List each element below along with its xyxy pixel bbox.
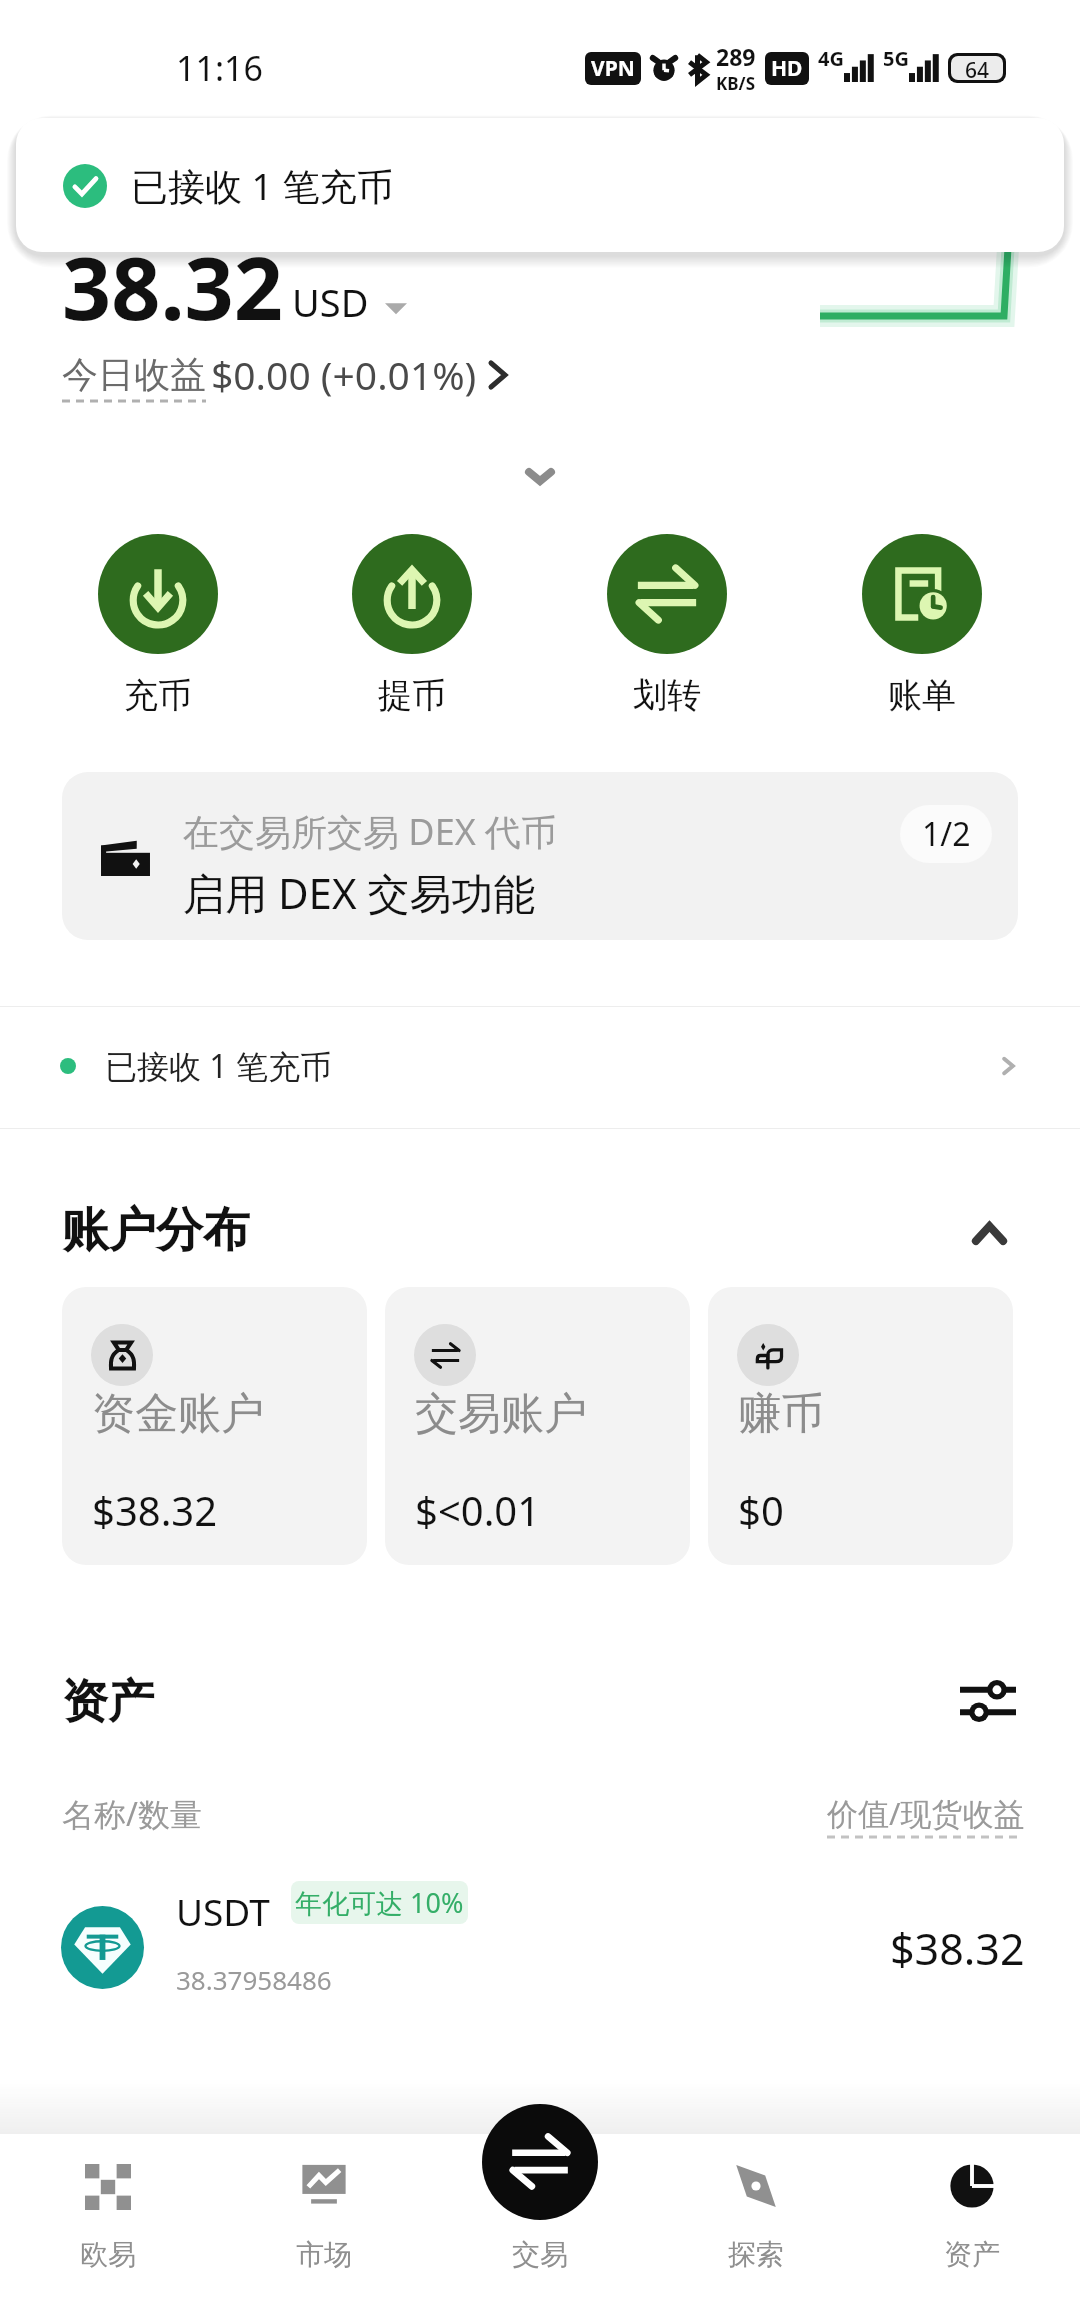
staticText: 交易账户	[415, 1387, 587, 1441]
staticText: 账单	[888, 674, 956, 717]
staticText: 11:16	[176, 45, 263, 91]
staticText: 启用 DEX 交易功能	[183, 864, 536, 921]
button[interactable]: 探索	[648, 2134, 864, 2300]
staticText: $0.00 (+0.01%)	[211, 348, 477, 401]
staticText: 38.37958486	[176, 1962, 332, 1997]
staticText: 64	[965, 56, 990, 80]
staticText: 欧易	[80, 2237, 136, 2272]
staticText: 账户分布	[62, 1201, 250, 1260]
button[interactable]: 赚币	[708, 1287, 1013, 1565]
staticText: $38.32	[92, 1483, 218, 1537]
staticText: 充币	[124, 674, 192, 717]
button[interactable]: 欧易	[0, 2134, 216, 2300]
staticText: 资产	[944, 2237, 1000, 2272]
staticText: $<0.01	[415, 1483, 541, 1537]
staticText: $38.32	[890, 1919, 1025, 1978]
button[interactable]: Collapse	[955, 1200, 1015, 1260]
staticText: 4G	[818, 45, 844, 72]
staticText: 划转	[633, 674, 701, 717]
button[interactable]: 在交易所交易 DEX 代币	[62, 772, 1018, 940]
staticText: 5G	[883, 45, 909, 72]
staticText: 价值/现货收益	[827, 1792, 1025, 1834]
staticText: 289	[716, 41, 756, 72]
button[interactable]: 交易	[482, 2104, 598, 2220]
button[interactable]: 市场	[216, 2134, 432, 2300]
button[interactable]: USDT	[0, 1881, 1080, 2041]
button[interactable]: 提币	[285, 534, 539, 717]
button[interactable]: 交易	[432, 2134, 648, 2300]
button[interactable]: 充币	[31, 534, 285, 717]
staticText: VPN	[591, 54, 635, 83]
staticText: 在交易所交易 DEX 代币	[183, 807, 558, 856]
staticText: 探索	[728, 2237, 784, 2272]
staticText: 赚币	[738, 1387, 824, 1441]
staticText: 今日收益	[62, 352, 206, 397]
staticText: USDT	[176, 1886, 270, 1936]
staticText: $0	[738, 1483, 784, 1537]
button[interactable]: 账单	[794, 534, 1049, 717]
staticText: 市场	[296, 2237, 352, 2272]
staticText: 交易	[512, 2237, 568, 2272]
button[interactable]: 已接收 1 笔充币	[16, 118, 1064, 252]
staticText: 名称/数量	[62, 1792, 202, 1836]
button[interactable]: 交易账户	[385, 1287, 690, 1565]
staticText: 资产	[62, 1673, 154, 1731]
staticText: HD	[771, 54, 803, 83]
button[interactable]: Filter	[952, 1665, 1024, 1737]
button[interactable]: Expand	[504, 441, 576, 513]
button[interactable]: 划转	[539, 534, 794, 717]
button[interactable]: 已接收 1 笔充币	[0, 1002, 1080, 1130]
staticText: USD	[292, 276, 369, 328]
staticText: 提币	[378, 674, 446, 717]
staticText: 38.32	[62, 228, 283, 345]
staticText: KB/S	[716, 72, 756, 95]
staticText: 已接收 1 笔充币	[131, 160, 394, 211]
staticText: 已接收 1 笔充币	[105, 1044, 332, 1088]
staticText: 年化可达 10%	[295, 1884, 464, 1921]
button[interactable]: 资产	[864, 2134, 1080, 2300]
staticText: 1/2	[922, 812, 971, 856]
button[interactable]: 资金账户	[62, 1287, 367, 1565]
staticText: 资金账户	[92, 1387, 264, 1441]
